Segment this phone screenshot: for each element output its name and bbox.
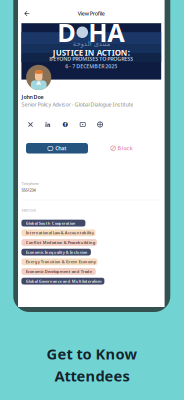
staticText: Global Governance and Multilateralism <box>26 278 102 284</box>
staticText: Telephone <box>21 181 38 186</box>
button[interactable]: Video <box>80 122 85 127</box>
button[interactable]: Economic Development and Trade <box>21 268 96 275</box>
staticText: منتدى الدوحة <box>72 40 110 48</box>
button[interactable]: Conflict Mediation & Peacebuilding <box>21 239 97 246</box>
button[interactable]: Website <box>97 122 103 127</box>
staticText: Senior Policy Advisor - Global Dialogue … <box>21 101 133 108</box>
button[interactable]: International Law & Accountability <box>21 229 95 236</box>
button[interactable]: Facebook <box>63 122 68 127</box>
staticText: Get to Know <box>46 344 137 363</box>
staticText: Economic Development and Trade <box>26 269 92 274</box>
staticText: JUSTICE IN ACTION: <box>53 47 130 58</box>
staticText: John Doe <box>21 93 43 101</box>
staticText: f <box>64 121 66 128</box>
staticText: Block <box>117 145 132 152</box>
button[interactable]: Back <box>20 7 33 20</box>
button[interactable]: Chat <box>26 143 88 153</box>
staticText: Chat <box>55 145 66 152</box>
staticText: Interests <box>21 207 36 213</box>
staticText: HA <box>88 15 125 49</box>
staticText: D <box>57 15 76 49</box>
staticText: 6 - 7 DECEMBER 2025 <box>65 63 117 70</box>
button[interactable]: Block <box>111 143 132 153</box>
button[interactable]: Energy Transition & Green Economy <box>21 258 97 265</box>
button[interactable]: Global Governance and Multilateralism <box>21 278 104 284</box>
staticText: Conflict Mediation & Peacebuilding <box>26 240 96 245</box>
button[interactable]: Economic Inequality & Inclusion <box>21 249 91 255</box>
staticText: Energy Transition & Green Economy <box>26 259 96 264</box>
button[interactable]: LinkedIn <box>45 122 50 127</box>
staticText: View Profile <box>78 10 105 17</box>
staticText: Global South Cooperation <box>26 220 76 226</box>
button[interactable]: Global South Cooperation <box>21 220 85 226</box>
staticText: 5551234 <box>21 187 35 193</box>
staticText: BEYOND PROMISES TO PROGRESS <box>49 55 133 62</box>
staticText: International Law & Accountability <box>26 230 94 235</box>
staticText: Attendees <box>54 366 129 386</box>
staticText: Economic Inequality & Inclusion <box>26 249 88 255</box>
button[interactable]: X <box>28 122 33 127</box>
